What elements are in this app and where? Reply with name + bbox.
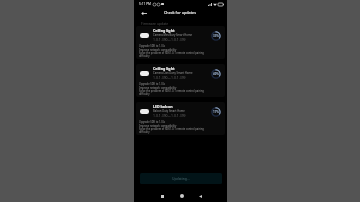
staticText: 17% (213, 110, 219, 114)
staticText: 1.0.1.390—1.0.1.399 (153, 75, 186, 80)
staticText: Balcon Duty Smart Home (153, 109, 185, 113)
staticText: Ceiling light (153, 28, 175, 33)
staticText: Ceiling light (153, 66, 175, 71)
button[interactable]: Ceiling light (136, 64, 225, 97)
staticText: Firmware update (141, 21, 169, 26)
staticText: Check for updates (164, 10, 197, 15)
staticText: 1.0.1.390—1.0.1.399 (153, 37, 186, 42)
staticText: Upgrade SDK to 1.0.b Improve network com… (139, 120, 207, 133)
staticText: Camera Dan Dany Smart Home (153, 71, 193, 75)
button[interactable]: Back (138, 7, 150, 19)
button[interactable]: Home (175, 189, 189, 202)
staticText: 5:11 PM (139, 2, 151, 6)
button[interactable]: Recents (155, 189, 169, 202)
staticText: Updating... (172, 176, 190, 181)
staticText: 33% (213, 34, 219, 38)
staticText: Upgrade SDK to 1.0.b Improve network com… (139, 44, 207, 57)
button[interactable]: Back (193, 189, 207, 202)
staticText: Camera Mes Bury Smart Home (153, 33, 192, 37)
staticText: 1.0.1.390—1.0.1.399 (153, 113, 186, 118)
staticText: Upgrade SDK to 1.0.b Improve network com… (139, 82, 207, 95)
staticText: 40% (213, 72, 219, 76)
button[interactable]: Ceiling light (136, 26, 225, 59)
button[interactable]: Updating... (140, 173, 222, 184)
button[interactable]: LED balcon (136, 102, 225, 135)
staticText: LED balcon (153, 104, 173, 109)
